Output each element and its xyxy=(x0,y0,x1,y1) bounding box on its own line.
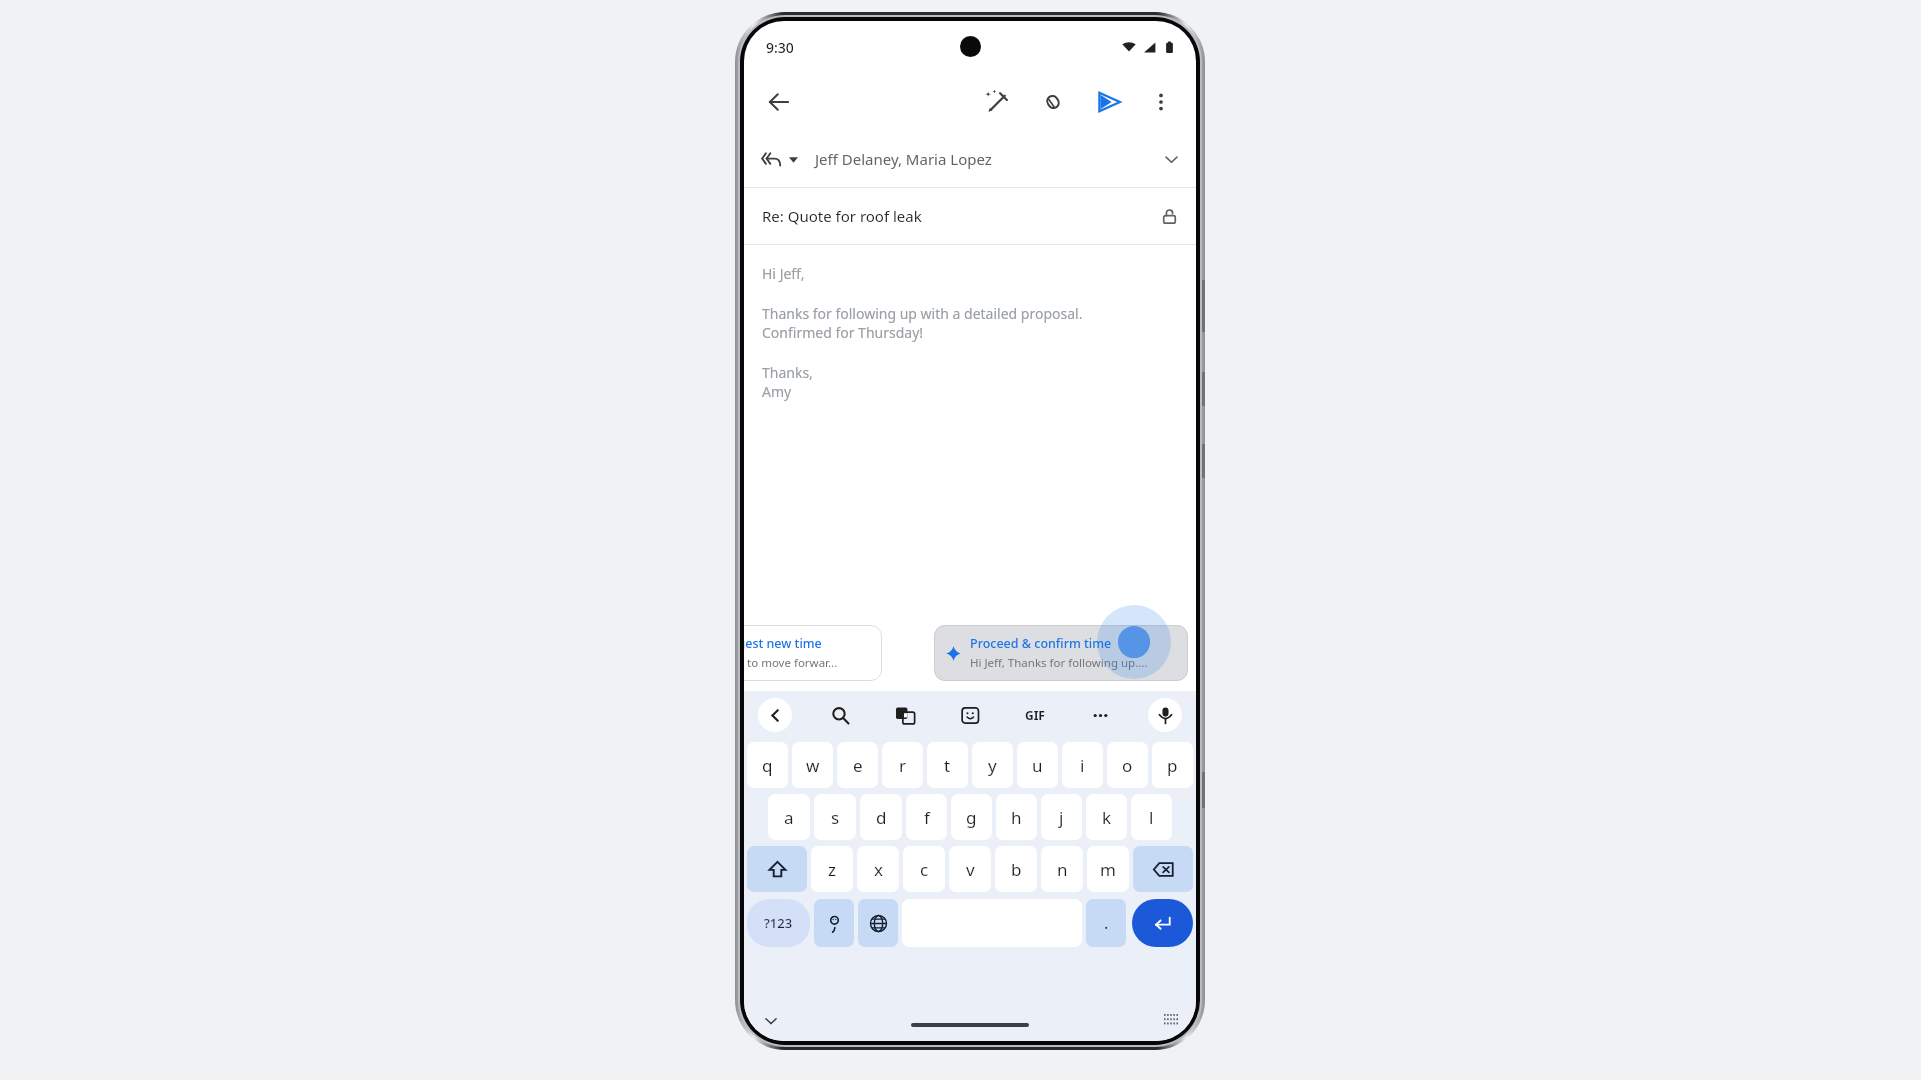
button[interactable]: Proceed & confirm time xyxy=(934,625,1188,681)
staticText: n xyxy=(1057,858,1068,881)
button[interactable]: Stickers xyxy=(953,698,987,732)
button[interactable]: v xyxy=(949,846,991,892)
button[interactable]: b xyxy=(995,846,1037,892)
button[interactable]: Translate xyxy=(888,698,922,732)
staticText: d xyxy=(876,806,887,829)
button[interactable]: s xyxy=(814,794,856,840)
staticText: i xyxy=(1080,754,1085,777)
button[interactable]: e xyxy=(837,742,878,788)
staticText: y xyxy=(988,754,997,777)
staticText: v xyxy=(966,858,975,881)
button[interactable]: g xyxy=(951,794,992,840)
button[interactable]: w xyxy=(792,742,833,788)
staticText: x xyxy=(874,858,883,881)
staticText: . xyxy=(1104,912,1109,934)
button[interactable]: Enter xyxy=(1132,899,1193,947)
button[interactable]: Change language xyxy=(858,899,898,947)
staticText: r xyxy=(899,754,907,777)
staticText: u xyxy=(1032,754,1043,777)
button[interactable]: d xyxy=(860,794,902,840)
button[interactable]: Switch keyboard xyxy=(1156,1006,1186,1036)
button[interactable]: k xyxy=(1086,794,1127,840)
staticText: m xyxy=(1100,858,1116,881)
button[interactable]: Back xyxy=(758,698,792,732)
button[interactable]: Emoji xyxy=(814,899,854,947)
staticText: p xyxy=(1167,754,1178,777)
staticText: Hi Jeff, xyxy=(762,264,805,283)
staticText: Hope to move forwar... xyxy=(744,655,838,671)
staticText: a xyxy=(784,806,794,829)
staticText: z xyxy=(828,858,836,881)
staticText: Re: Quote for roof leak xyxy=(762,206,1161,226)
button[interactable]: Voice input xyxy=(1148,698,1182,732)
button[interactable]: p xyxy=(1152,742,1193,788)
button[interactable]: . xyxy=(1086,899,1126,947)
button[interactable]: Hide keyboard xyxy=(754,1004,788,1038)
button[interactable]: r xyxy=(882,742,923,788)
button[interactable]: y xyxy=(972,742,1013,788)
button[interactable]: z xyxy=(811,846,853,892)
staticText: e xyxy=(853,754,863,777)
staticText: f xyxy=(924,806,930,829)
button[interactable]: Hi Jeff, xyxy=(744,245,1196,617)
button[interactable]: f xyxy=(906,794,947,840)
button[interactable]: Back xyxy=(758,81,800,123)
button[interactable]: x xyxy=(857,846,899,892)
button[interactable]: Re: Quote for roof leak xyxy=(744,188,1196,244)
button[interactable]: Suggest new time xyxy=(744,625,882,681)
staticText: 9:30 xyxy=(766,38,794,57)
staticText: Suggest new time xyxy=(744,635,822,652)
staticText: g xyxy=(966,806,977,829)
staticText: Thanks, xyxy=(762,363,813,382)
button[interactable]: GIF xyxy=(1018,698,1052,732)
staticText: Jeff Delaney, Maria Lopez xyxy=(815,149,1163,169)
staticText: h xyxy=(1011,806,1022,829)
button[interactable]: c xyxy=(903,846,945,892)
button[interactable]: Send xyxy=(1088,81,1130,123)
button[interactable]: h xyxy=(996,794,1037,840)
button[interactable]: u xyxy=(1017,742,1058,788)
staticText: Thanks for following up with a detailed … xyxy=(762,304,1083,323)
button[interactable]: Search xyxy=(823,698,857,732)
staticText: ?123 xyxy=(764,914,793,932)
button[interactable]: l xyxy=(1131,794,1172,840)
staticText: Proceed & confirm time xyxy=(970,635,1112,652)
button[interactable]: Backspace xyxy=(1133,846,1193,892)
staticText: o xyxy=(1122,754,1133,777)
button[interactable]: o xyxy=(1107,742,1148,788)
button[interactable]: Write with AI xyxy=(976,81,1018,123)
button[interactable]: Shift xyxy=(747,846,807,892)
staticText: k xyxy=(1102,806,1112,829)
staticText: t xyxy=(944,754,951,777)
button[interactable]: More options xyxy=(1140,81,1182,123)
button[interactable]: n xyxy=(1041,846,1083,892)
button[interactable]: More xyxy=(1083,698,1117,732)
staticText: q xyxy=(762,754,773,777)
button[interactable]: ?123 xyxy=(747,899,810,947)
staticText: j xyxy=(1059,806,1064,829)
button[interactable]: m xyxy=(1087,846,1129,892)
button[interactable]: t xyxy=(927,742,968,788)
button[interactable]: a xyxy=(768,794,810,840)
staticText: Confirmed for Thursday! xyxy=(762,323,924,342)
staticText: Hi Jeff, Thanks for following up.... xyxy=(970,655,1148,671)
staticText: l xyxy=(1149,806,1154,829)
staticText: c xyxy=(920,858,929,881)
button[interactable]: Attach file xyxy=(1032,81,1074,123)
staticText: Amy xyxy=(762,382,792,401)
button[interactable]: j xyxy=(1041,794,1082,840)
staticText: b xyxy=(1011,858,1022,881)
button[interactable]: Jeff Delaney, Maria Lopez xyxy=(744,131,1196,187)
button[interactable]: i xyxy=(1062,742,1103,788)
button[interactable]: q xyxy=(747,742,788,788)
staticText: s xyxy=(831,806,840,829)
staticText: GIF xyxy=(1025,707,1045,723)
staticText: w xyxy=(806,754,820,777)
